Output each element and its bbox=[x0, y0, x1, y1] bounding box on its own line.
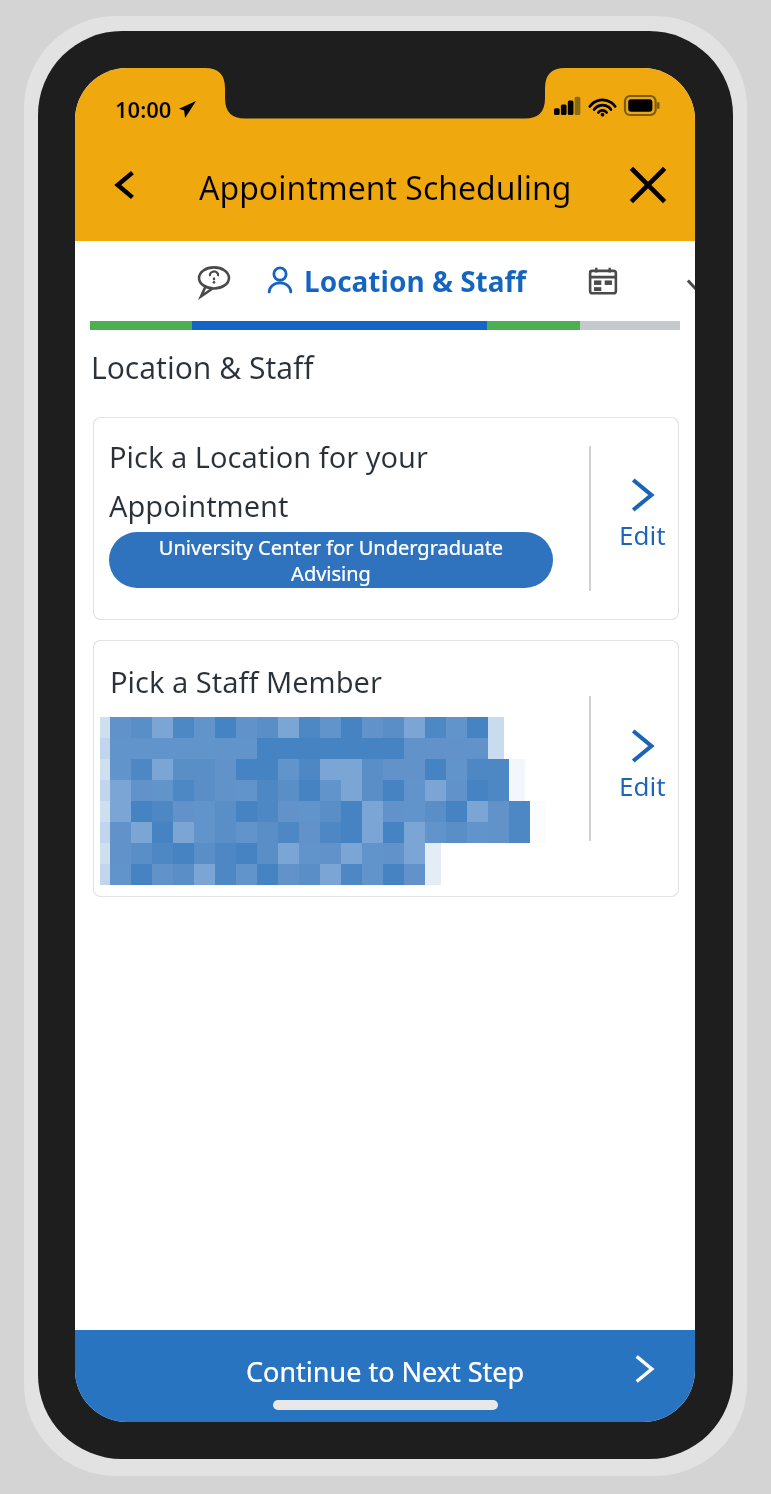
staticText: Location & Staff bbox=[304, 262, 527, 300]
button[interactable]: Edit bbox=[605, 477, 679, 552]
staticText: Continue to Next Step bbox=[246, 1353, 525, 1390]
button[interactable]: Edit bbox=[605, 728, 679, 803]
button[interactable]: Pick a Location for your Appointment bbox=[93, 417, 679, 620]
staticText: Pick a Staff Member bbox=[110, 662, 382, 701]
button[interactable]: Date and time bbox=[575, 241, 631, 321]
staticText: Appointment Scheduling bbox=[199, 166, 572, 210]
staticText: Edit bbox=[619, 517, 666, 552]
button[interactable]: Back bbox=[97, 157, 153, 213]
staticText: Location & Staff bbox=[91, 347, 314, 388]
button[interactable]: Close bbox=[619, 156, 677, 214]
staticText: Pick a Location for your Appointment bbox=[109, 437, 569, 526]
button[interactable]: Pick a Staff Member bbox=[93, 640, 679, 897]
button[interactable]: University Center for Undergraduate Advi… bbox=[109, 532, 553, 588]
button[interactable]: Confirm bbox=[675, 241, 695, 321]
staticText: Edit bbox=[619, 768, 666, 803]
button[interactable]: Reason bbox=[185, 241, 243, 321]
staticText: 10:00 bbox=[115, 94, 172, 124]
button[interactable]: Location & Staff bbox=[265, 241, 527, 321]
button[interactable]: Continue to Next Step bbox=[75, 1330, 695, 1422]
staticText: University Center for Undergraduate Advi… bbox=[119, 534, 543, 586]
